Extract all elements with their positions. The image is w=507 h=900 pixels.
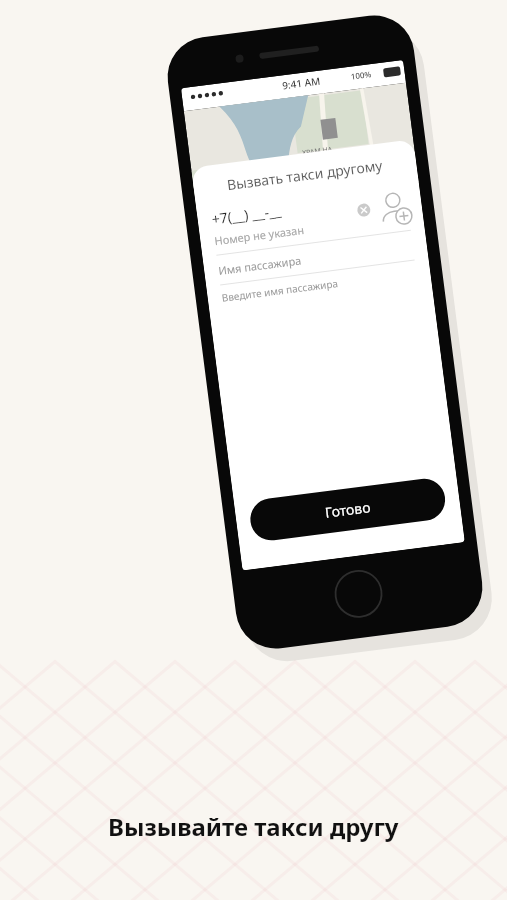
button[interactable]: Вызывайте такси другу — [0, 0, 507, 900]
